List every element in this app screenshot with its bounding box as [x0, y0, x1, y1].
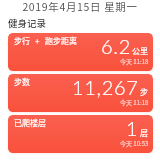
staticText: 已爬楼层 — [14, 117, 46, 129]
staticText: 跑步距离 — [45, 35, 77, 47]
staticText: 1 — [126, 116, 139, 140]
button[interactable]: 步数 — [8, 74, 153, 112]
staticText: 11,267 — [72, 75, 139, 99]
staticText: 2019年4月15日 星期一 — [0, 0, 160, 14]
staticText: 步 — [140, 86, 148, 98]
staticText: 层 — [140, 127, 148, 139]
staticText: 6.2 — [101, 34, 131, 58]
staticText: 今天 11:18 — [120, 57, 149, 66]
staticText: + — [35, 35, 40, 47]
button[interactable]: 已爬楼层 — [8, 115, 153, 153]
staticText: 步数 — [14, 76, 30, 88]
button[interactable]: 步行 — [8, 33, 153, 71]
staticText: 健身记录 — [8, 16, 47, 30]
staticText: 公里 — [132, 45, 148, 57]
staticText: 步行 — [14, 35, 30, 47]
staticText: 今天 11:18 — [120, 98, 149, 107]
staticText: 今天 10:53 — [120, 139, 149, 148]
